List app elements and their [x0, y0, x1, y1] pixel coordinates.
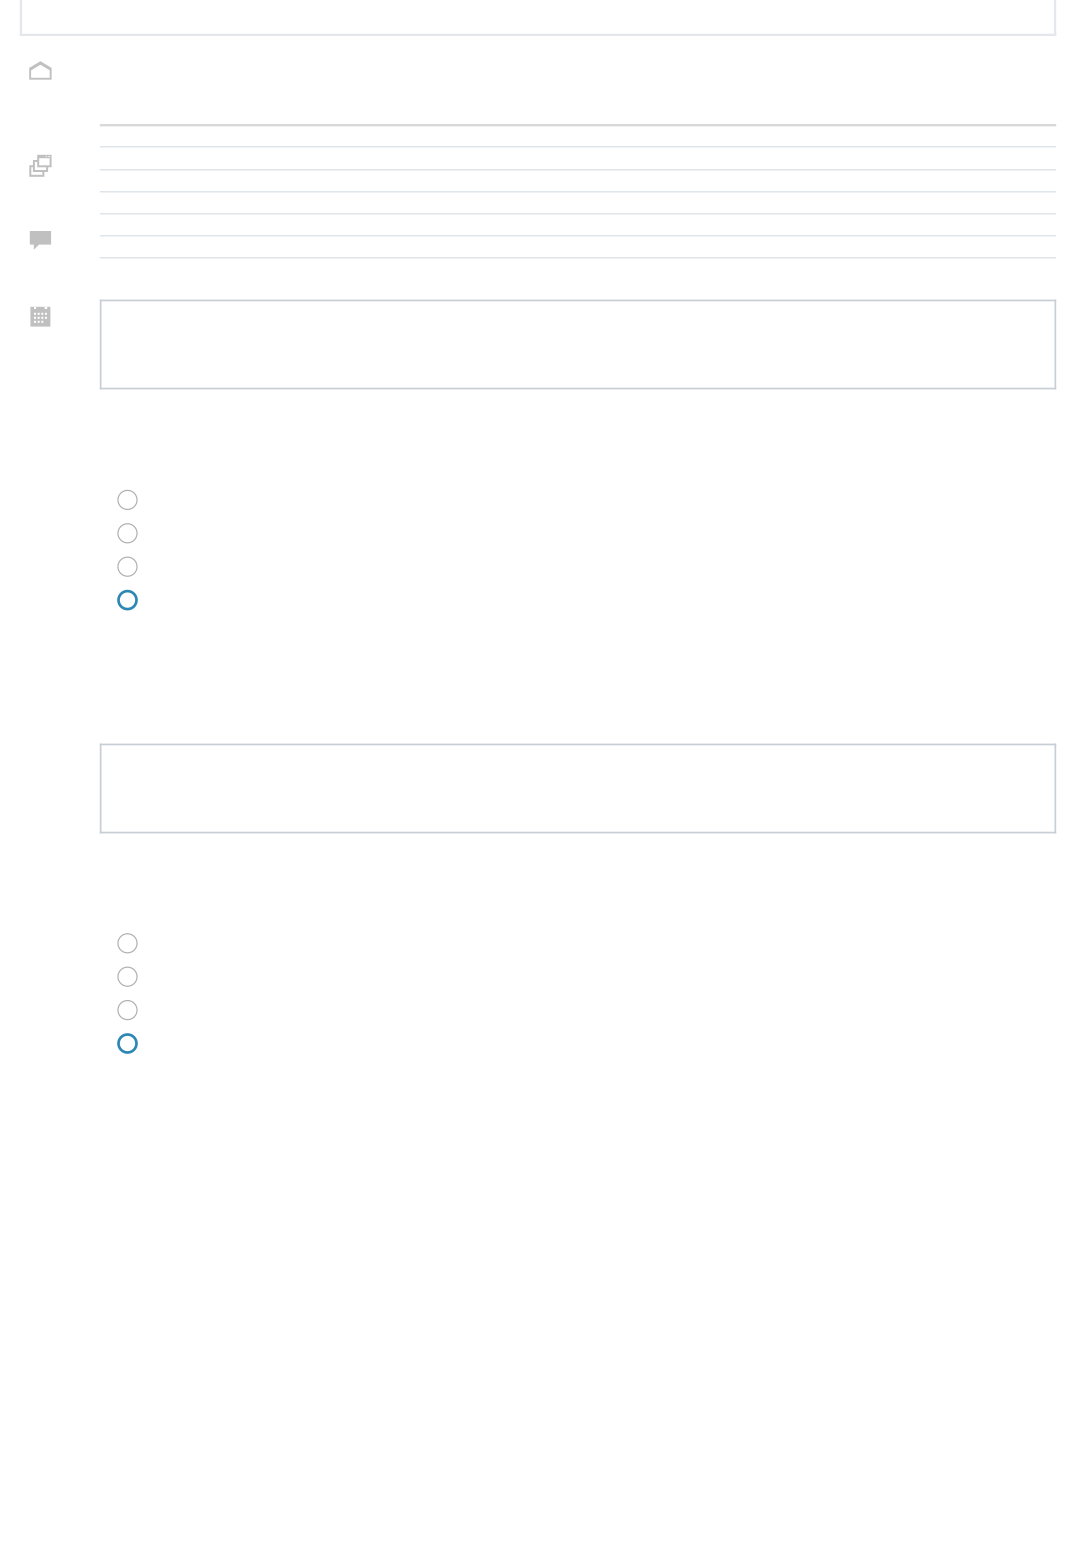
button[interactable]: Second text field [100, 744, 1056, 833]
button[interactable]: Row 5 [100, 215, 1056, 236]
button[interactable]: Calendar [30, 307, 50, 327]
button[interactable]: Row 2 [100, 148, 1056, 170]
button[interactable]: Row 6 [100, 237, 1056, 258]
button[interactable]: Messages [30, 231, 51, 250]
button[interactable]: First group option 1 [118, 490, 137, 509]
button[interactable]: Row 1 [100, 126, 1056, 147]
button[interactable]: Search [20, 0, 1056, 36]
button[interactable]: First group option 3 [118, 557, 137, 576]
button[interactable]: First text field [100, 300, 1056, 389]
button[interactable]: Second group option 1 [118, 934, 137, 953]
button[interactable]: First group option 2 [118, 524, 137, 543]
button[interactable]: First group option 4 [118, 591, 136, 609]
button[interactable]: Home [29, 61, 52, 80]
button[interactable]: Windows [27, 155, 49, 177]
button[interactable]: Second group option 2 [118, 967, 137, 986]
button[interactable]: Second group option 4 [118, 1034, 136, 1052]
button[interactable]: Row 4 [100, 193, 1056, 214]
button[interactable]: Second group option 3 [118, 1000, 137, 1020]
button[interactable]: Row 3 [100, 171, 1056, 192]
